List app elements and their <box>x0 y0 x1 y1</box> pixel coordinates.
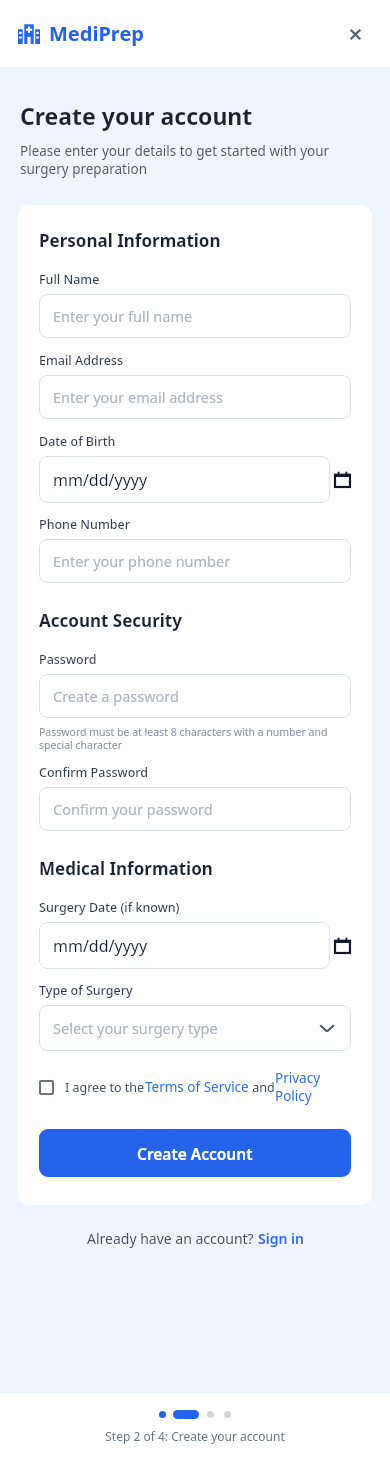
staticText: Type of Surgery <box>39 982 133 999</box>
staticText: Already have an account? <box>87 1229 258 1248</box>
button[interactable]: Close <box>338 17 372 51</box>
staticText: Surgery Date (if known) <box>39 899 180 916</box>
button[interactable]: Create a password <box>39 674 351 718</box>
staticText: Confirm Password <box>39 764 149 781</box>
staticText: Personal Information <box>39 229 221 252</box>
other: Pick date <box>334 937 351 954</box>
staticText: Full Name <box>39 271 100 288</box>
staticText: Email Address <box>39 352 124 369</box>
staticText: mm/dd/yyyy <box>53 935 148 957</box>
staticText: Password must be at least 8 characters w… <box>39 725 351 752</box>
button[interactable]: Enter your phone number <box>39 539 351 583</box>
staticText: and <box>249 1079 275 1096</box>
staticText: Enter your full name <box>53 306 193 326</box>
staticText: I agree to the <box>65 1079 145 1096</box>
button[interactable]: Enter your email address <box>39 375 351 419</box>
staticText: Medical Information <box>39 857 213 880</box>
staticText: Account Security <box>39 609 182 632</box>
button[interactable]: Privacy Policy <box>275 1069 351 1105</box>
other: Open dropdown <box>317 1018 337 1038</box>
button[interactable]: Terms of Service <box>145 1078 249 1096</box>
button[interactable]: Select your surgery type <box>39 1005 351 1051</box>
staticText: Enter your phone number <box>53 551 231 571</box>
staticText: Confirm your password <box>53 799 213 819</box>
button[interactable]: Create Account <box>39 1129 351 1177</box>
staticText: Create a password <box>53 686 179 706</box>
staticText: Phone Number <box>39 516 130 533</box>
staticText: Enter your email address <box>53 387 223 407</box>
staticText: Create your account <box>20 100 253 131</box>
button[interactable]: Enter your full name <box>39 294 351 338</box>
button[interactable]: Agree to terms <box>39 1069 351 1105</box>
staticText: Select your surgery type <box>53 1018 218 1038</box>
other: Pick date <box>334 471 351 488</box>
button[interactable]: Sign in <box>258 1229 304 1248</box>
staticText: Password <box>39 651 97 668</box>
other: Agree to terms <box>39 1080 54 1095</box>
staticText: MediPrep <box>49 20 144 47</box>
staticText: Create Account <box>137 1143 253 1164</box>
button[interactable]: mm/dd/yyyy <box>39 922 330 969</box>
staticText: mm/dd/yyyy <box>53 469 148 491</box>
staticText: Step 2 of 4: Create your account <box>105 1428 285 1444</box>
button[interactable]: mm/dd/yyyy <box>39 456 330 503</box>
staticText: Please enter your details to get started… <box>20 142 370 178</box>
staticText: Date of Birth <box>39 433 116 450</box>
button[interactable]: Confirm your password <box>39 787 351 831</box>
